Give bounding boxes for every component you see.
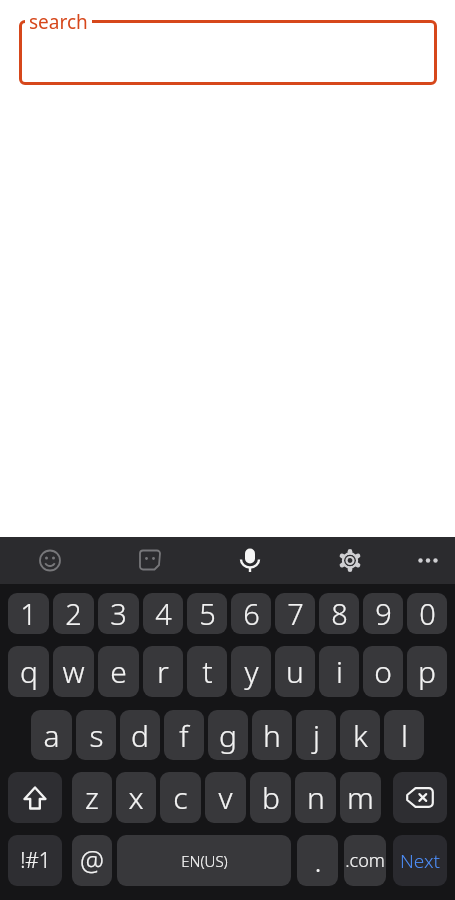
button[interactable]: @ [72, 835, 112, 886]
button[interactable]: f [164, 710, 204, 760]
button[interactable] [28, 537, 72, 584]
staticText: i [336, 651, 343, 692]
button[interactable]: 9 [363, 593, 403, 634]
button[interactable]: 0 [407, 593, 447, 634]
button[interactable]: Next [393, 835, 447, 886]
button[interactable]: j [296, 710, 336, 760]
button[interactable] [228, 537, 272, 584]
staticText: . [314, 841, 322, 880]
staticText: o [374, 651, 392, 692]
staticText: l [401, 715, 408, 756]
staticText: t [202, 651, 213, 692]
staticText: 8 [331, 594, 348, 633]
button[interactable] [128, 537, 172, 584]
button[interactable] [8, 772, 62, 823]
button[interactable]: z [72, 772, 112, 823]
staticText: Next [400, 848, 440, 874]
staticText: 3 [110, 594, 127, 633]
staticText: d [131, 715, 149, 756]
button[interactable]: m [340, 772, 381, 823]
button[interactable]: r [143, 646, 183, 697]
button[interactable]: h [252, 710, 292, 760]
button[interactable]: . [297, 835, 338, 886]
button[interactable]: i [319, 646, 359, 697]
button[interactable]: 6 [231, 593, 271, 634]
staticText: 9 [375, 594, 392, 633]
staticText: e [110, 651, 127, 692]
button[interactable] [406, 537, 450, 584]
button[interactable]: 4 [143, 593, 183, 634]
staticText: q [20, 651, 38, 692]
button[interactable] [328, 537, 372, 584]
button[interactable]: e [98, 646, 139, 697]
staticText: EN(US) [181, 851, 228, 871]
button[interactable] [393, 772, 447, 823]
button[interactable]: a [31, 710, 72, 760]
button[interactable]: .com [344, 835, 386, 886]
button[interactable]: o [363, 646, 403, 697]
button[interactable]: 8 [319, 593, 359, 634]
staticText: 1 [20, 594, 37, 633]
staticText: y [244, 651, 259, 692]
button[interactable]: EN(US) [117, 835, 291, 886]
staticText: 5 [199, 594, 216, 633]
staticText: j [313, 715, 320, 756]
staticText: 0 [419, 594, 436, 633]
staticText: r [157, 651, 169, 692]
button[interactable]: d [120, 710, 160, 760]
button[interactable]: t [187, 646, 227, 697]
staticText: 6 [243, 594, 260, 633]
button[interactable]: y [231, 646, 271, 697]
button[interactable]: w [53, 646, 94, 697]
button[interactable]: l [384, 710, 424, 760]
button[interactable]: c [160, 772, 201, 823]
staticText: m [347, 777, 374, 818]
staticText: 4 [155, 594, 172, 633]
button[interactable]: 7 [275, 593, 315, 634]
staticText: 7 [287, 594, 304, 633]
staticText: n [307, 777, 325, 818]
staticText: w [62, 651, 85, 692]
button[interactable]: g [208, 710, 248, 760]
button[interactable]: k [340, 710, 380, 760]
staticText: 2 [65, 594, 82, 633]
staticText: b [262, 777, 280, 818]
staticText: x [128, 777, 144, 818]
staticText: f [179, 715, 189, 756]
button[interactable]: 5 [187, 593, 227, 634]
button[interactable]: 3 [98, 593, 139, 634]
button[interactable]: n [295, 772, 336, 823]
button[interactable]: 2 [53, 593, 94, 634]
staticText: !#1 [20, 846, 51, 875]
button[interactable]: u [275, 646, 315, 697]
button[interactable]: p [407, 646, 447, 697]
staticText: k [353, 715, 368, 756]
staticText: z [85, 777, 99, 818]
staticText: g [219, 715, 237, 756]
staticText: u [286, 651, 304, 692]
staticText: h [263, 715, 281, 756]
button[interactable]: !#1 [8, 835, 62, 886]
staticText: a [43, 715, 60, 756]
button[interactable]: x [116, 772, 156, 823]
staticText: c [173, 777, 188, 818]
button[interactable]: v [205, 772, 246, 823]
staticText: p [418, 651, 436, 692]
staticText: search [29, 9, 88, 35]
button[interactable]: s [76, 710, 116, 760]
button[interactable]: b [250, 772, 291, 823]
button[interactable]: 1 [8, 593, 49, 634]
staticText: s [89, 715, 104, 756]
button[interactable] [19, 20, 437, 85]
staticText: .com [345, 848, 385, 873]
staticText: v [218, 777, 233, 818]
staticText: @ [80, 842, 104, 879]
button[interactable]: q [8, 646, 49, 697]
